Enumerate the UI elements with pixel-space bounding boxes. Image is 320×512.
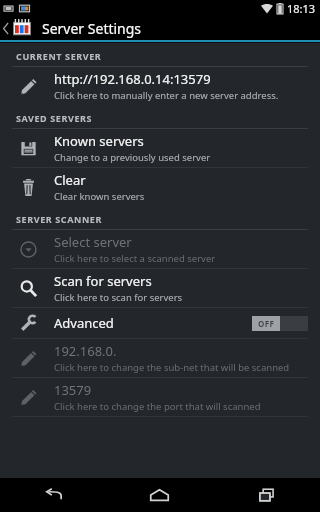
button[interactable]: Scan for servers: [0, 269, 320, 307]
button[interactable]: Navigate up: [0, 16, 36, 40]
staticText: Server Settings: [42, 19, 142, 38]
staticText: Advanced: [54, 314, 114, 332]
staticText: Click here to change the port that will …: [54, 400, 261, 413]
button[interactable]: Select server: [0, 230, 320, 268]
staticText: http://192.168.0.14:13579: [54, 70, 211, 88]
button[interactable]: Back: [0, 478, 106, 512]
button[interactable]: Known servers: [0, 129, 320, 167]
button[interactable]: Advanced: [0, 308, 320, 338]
staticText: SAVED SERVERS: [16, 112, 93, 124]
staticText: Change to a previously used server: [54, 151, 211, 164]
staticText: SERVER SCANNER: [16, 213, 102, 225]
staticText: OFF: [258, 318, 275, 329]
staticText: Clear: [54, 171, 86, 189]
staticText: Click here to manually enter a new serve…: [54, 89, 279, 102]
staticText: 192.168.0.: [54, 342, 117, 360]
staticText: Clear known servers: [54, 190, 145, 203]
staticText: Click here to select a scanned server: [54, 252, 216, 265]
staticText: Known servers: [54, 132, 144, 150]
button[interactable]: Change port: [0, 378, 320, 416]
button[interactable]: Home: [106, 478, 213, 512]
button[interactable]: Recent apps: [213, 478, 320, 512]
button[interactable]: Edit server address: [0, 67, 320, 105]
staticText: CURRENT SERVER: [16, 50, 102, 62]
button[interactable]: Clear: [0, 168, 320, 206]
staticText: Scan for servers: [54, 272, 152, 290]
staticText: Select server: [54, 233, 132, 251]
staticText: Click here to change the sub-net that wi…: [54, 361, 290, 374]
staticText: Click here to scan for servers: [54, 291, 183, 304]
staticText: 18:13: [287, 1, 316, 16]
button[interactable]: Change sub-net: [0, 339, 320, 377]
button[interactable]: Advanced toggle, off: [252, 316, 308, 331]
staticText: 13579: [54, 381, 92, 399]
